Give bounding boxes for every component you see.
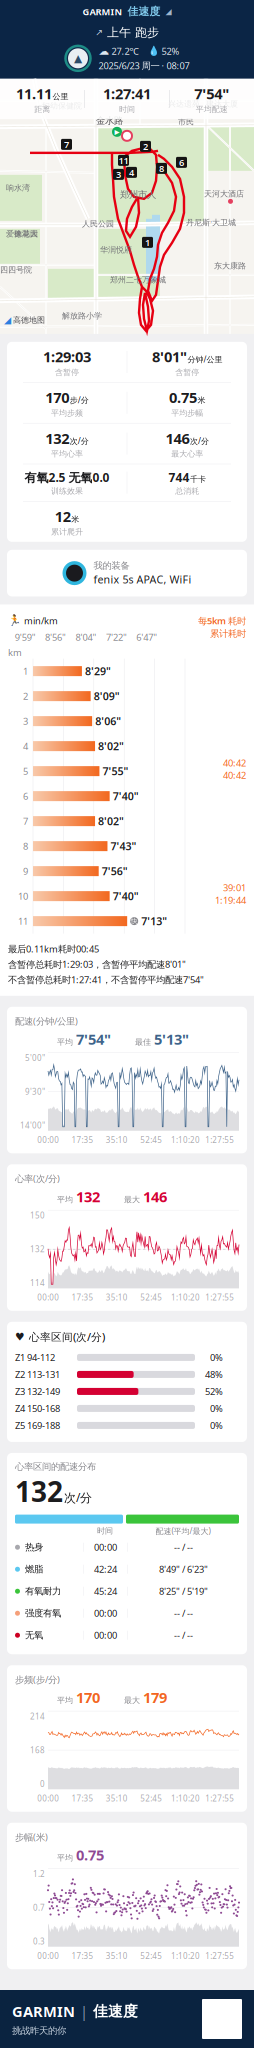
staticText: 有氧2.5 无氧0.0 [24, 469, 109, 485]
staticText: 丹尼斯·大卫城 [186, 217, 236, 227]
staticText: 佳速度 [93, 2002, 138, 2020]
staticText: 40:42 [223, 769, 246, 781]
staticText: 168 [30, 1745, 45, 1755]
staticText: 0% [210, 1351, 223, 1364]
staticText: 1:10:20 [171, 1135, 200, 1145]
staticText: 27.2℃ [111, 45, 138, 57]
staticText: 8'06" [95, 714, 121, 728]
staticText: 无氧 [25, 1629, 43, 1641]
staticText: 8'09" [94, 689, 120, 703]
staticText: 5'00" [25, 1053, 45, 1063]
staticText: 1:27:55 [205, 1951, 234, 1961]
staticText: 豫港大 [14, 229, 38, 239]
staticText: 11.11 [16, 84, 52, 103]
staticText: 00:00 [37, 1135, 59, 1145]
staticText: 7'13" [141, 914, 167, 928]
staticText: 平均步幅 [171, 408, 203, 418]
staticText: 1:10:20 [171, 1292, 200, 1303]
staticText: 累计爬升 [51, 527, 83, 537]
staticText: 8'04" [75, 631, 96, 643]
staticText: 00:00 [37, 1793, 59, 1804]
staticText: 8'29" [85, 664, 111, 678]
staticText: 0% [210, 1419, 223, 1432]
staticText: Z4 150-168 [15, 1402, 60, 1415]
staticText: 次/分 [64, 1489, 92, 1505]
staticText: 6 [23, 790, 28, 802]
staticText: 东大康路 [214, 261, 246, 271]
staticText: km [8, 646, 22, 659]
staticText: 8'02" [98, 814, 124, 828]
staticText: 45:24 [94, 1585, 117, 1597]
staticText: 平均步频 [51, 408, 83, 418]
staticText: 我的装备 [93, 560, 129, 571]
staticText: 步幅(米) [15, 1831, 48, 1843]
staticText: 42:24 [94, 1563, 117, 1575]
staticText: -- / -- [174, 1541, 193, 1553]
staticText: 平均配速 [196, 104, 228, 114]
staticText: GARMIN [82, 5, 122, 18]
staticText: 8'01" [152, 347, 187, 366]
staticText: 11 [118, 154, 128, 166]
staticText: 🏃 [8, 615, 21, 627]
staticText: 建达大厦 [206, 99, 238, 109]
staticText: 7'40" [113, 889, 139, 903]
staticText: 8'56" [45, 631, 66, 643]
staticText: 郑州市人 [120, 189, 156, 200]
staticText: 00:00 [94, 1607, 117, 1619]
staticText: 公里 [52, 92, 68, 101]
staticText: 快 [131, 917, 138, 925]
staticText: 强度有氧 [25, 1607, 61, 1619]
staticText: 心率区间的配速分布 [15, 1461, 96, 1472]
staticText: 配速(分钟/公里) [15, 1015, 78, 1027]
staticText: 每5km 耗时 [198, 614, 246, 627]
staticText: 步/分 [70, 395, 89, 405]
staticText: 0.7 [33, 1902, 45, 1913]
staticText: 170 [76, 1688, 100, 1707]
staticText: 0.75 [76, 1845, 104, 1865]
staticText: 17:35 [71, 1793, 93, 1804]
staticText: 00:00 [37, 1951, 59, 1961]
staticText: 心率区间(次/分) [29, 1330, 105, 1344]
staticText: 7'54" [76, 1029, 111, 1049]
staticText: 配速(平均/最大) [155, 1526, 210, 1536]
staticText: 52:45 [140, 1292, 162, 1303]
staticText: 1 [145, 236, 150, 248]
staticText: 1:27:55 [205, 1135, 234, 1145]
staticText: 含暂停 [55, 367, 79, 377]
staticText: 9'30" [25, 1086, 45, 1097]
staticText: 52:45 [140, 1793, 162, 1804]
staticText: 次/分 [190, 436, 209, 446]
staticText: 6 [179, 156, 184, 168]
staticText: 48% [205, 1368, 223, 1381]
staticText: 12 [55, 506, 71, 526]
staticText: 训练效果 [51, 486, 83, 496]
staticText: 4 [129, 166, 134, 178]
staticText: 米 [197, 395, 205, 405]
button[interactable]: 我的装备 [0, 550, 254, 604]
staticText: 最大 [124, 1695, 140, 1705]
staticText: 天河大酒店 [204, 189, 244, 199]
staticText: ▲ [74, 52, 82, 64]
staticText: 132 [76, 1187, 100, 1206]
staticText: 次/分 [70, 436, 89, 446]
staticText: fenix 5s APAC, WiFi [93, 572, 191, 586]
staticText: 市民 [178, 117, 194, 127]
staticText: 妇幼保健院 [42, 101, 82, 111]
staticText: 有氧耐力 [25, 1585, 61, 1597]
staticText: 1:27:41 [103, 84, 151, 103]
staticText: 平均 [57, 1853, 73, 1863]
staticText: 不含暂停总耗时1:27:41，不含暂停平均配速7'54" [8, 973, 204, 986]
staticText: 11 [18, 915, 28, 927]
staticText: 8'25" / 5'19" [159, 1585, 208, 1597]
staticText: 千卡 [190, 474, 206, 484]
staticText: 步频(步/分) [15, 1673, 60, 1686]
staticText: 1 [23, 665, 28, 677]
staticText: 热身 [25, 1541, 43, 1553]
staticText: 最大 [124, 1195, 140, 1204]
staticText: 含暂停 [175, 367, 199, 377]
staticText: 214 [30, 1711, 45, 1722]
staticText: 含暂停总耗时1:29:03，含暂停平均配速8'01" [8, 958, 186, 970]
staticText: 1:19:44 [215, 894, 246, 906]
staticText: 8 [159, 162, 164, 174]
staticText: ◢ [165, 7, 171, 16]
